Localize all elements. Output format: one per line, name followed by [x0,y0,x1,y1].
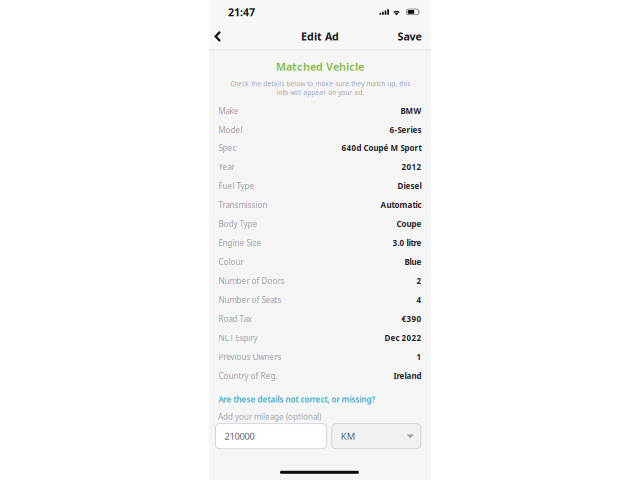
staticText: 3.0 litre [392,238,421,248]
staticText: Diesel [397,181,421,191]
staticText: Add your mileage (optional) [218,411,321,422]
staticText: Automatic [380,200,421,210]
staticText: 210000 [224,430,254,442]
staticText: Edit Ad [301,29,339,43]
staticText: Ireland [393,371,421,381]
staticText: Number of Seats [218,295,281,305]
staticText: Make [218,106,238,116]
staticText: Previous Owners [218,352,281,362]
staticText: BMW [400,106,421,116]
staticText: Save [397,29,421,43]
staticText: Matched Vehicle [276,59,364,74]
staticText: 1 [416,352,421,362]
staticText: Colour [218,257,243,267]
staticText: 4 [416,295,421,305]
staticText: Model [218,125,242,135]
staticText: NCT Expiry [218,333,257,343]
staticText: Blue [404,257,421,267]
staticText: 2012 [401,162,421,172]
staticText: Check the details below to make sure the… [230,79,410,97]
staticText: 640d Coupé M Sport [341,143,421,153]
staticText: Number of Doors [218,276,284,286]
staticText: Transmission [218,200,267,210]
staticText: Are these details not correct, or missin… [218,394,375,405]
staticText: Engine Size [218,238,261,248]
staticText: Fuel Type [218,181,254,191]
staticText: Dec 2022 [384,333,421,343]
staticText: 2 [416,276,421,286]
staticText: Body Type [218,219,257,229]
staticText: KM [341,430,355,442]
staticText: Year [218,162,234,172]
button[interactable]: Are these details not correct, or missin… [218,394,388,405]
button[interactable]: Back [206,23,230,49]
staticText: €390 [401,314,421,324]
staticText: Spec [218,143,236,153]
staticText: Road Tax [218,314,251,324]
staticText: 21:47 [228,5,255,19]
staticText: 6-Series [389,125,421,135]
staticText: Coupe [396,219,421,229]
button[interactable]: Mileage unit [332,424,421,449]
button[interactable]: Save [375,23,421,49]
staticText: Country of Reg. [218,371,277,381]
